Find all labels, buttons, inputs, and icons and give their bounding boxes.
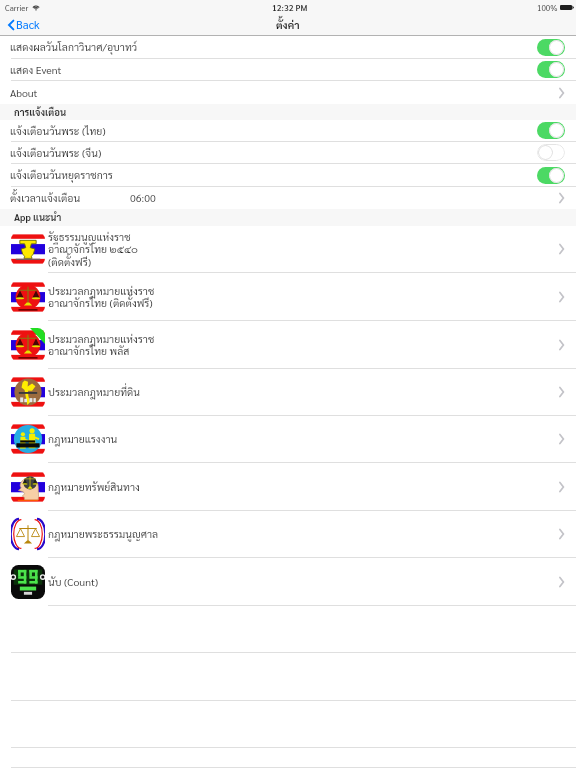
button[interactable]: ประมวลกฎหมายแห่งราช อาณาจักรไทย (ติดตั้ง… xyxy=(0,273,576,321)
staticText: 06:00 xyxy=(130,191,156,205)
button[interactable]: รัฐธรรมนูญแห่งราช อาณาจักรไทย ๒๕๔๐ (ติดต… xyxy=(0,226,576,273)
button[interactable]: แสดง Event xyxy=(0,59,576,81)
staticText: กฎหมายทรัพย์สินทาง xyxy=(48,480,140,494)
other: Toggle on xyxy=(537,122,565,139)
staticText: แจ้งเตือนวันหยุดราชการ xyxy=(10,168,113,182)
button[interactable]: แจ้งเตือนวันหยุดราชการ xyxy=(0,164,576,187)
staticText: 12:32 PM xyxy=(272,2,308,13)
other: Toggle on xyxy=(537,61,565,78)
button[interactable]: ประมวลกฎหมายที่ดิน xyxy=(0,369,576,416)
staticText: ตั้งค่า xyxy=(276,18,300,32)
button[interactable]: แจ้งเตือนวันพระ (ไทย) xyxy=(0,120,576,142)
staticText: App แนะนำ xyxy=(14,211,62,223)
staticText: กฎหมายแรงงาน xyxy=(48,432,118,446)
button[interactable]: แจ้งเตือนวันพระ (จีน) xyxy=(0,142,576,164)
button[interactable]: ตั้งเวลาแจ้งเตือน xyxy=(0,187,576,209)
button[interactable]: Back xyxy=(0,14,576,36)
staticText: รัฐธรรมนูญแห่งราช อาณาจักรไทย ๒๕๔๐ (ติดต… xyxy=(48,230,138,269)
staticText: Carrier xyxy=(5,2,29,12)
staticText: ประมวลกฎหมายแห่งราช อาณาจักรไทย (ติดตั้ง… xyxy=(48,284,155,310)
staticText: About xyxy=(10,86,38,100)
staticText: นับ (Count) xyxy=(48,575,99,589)
button[interactable]: กฎหมายพระธรรมนูญศาล xyxy=(0,511,576,558)
staticText: แจ้งเตือนวันพระ (จีน) xyxy=(10,146,102,160)
staticText: 100% xyxy=(537,2,558,12)
button[interactable]: แสดงผลวันโลกาวินาศ/อุบาทว์ xyxy=(0,36,576,59)
other: Toggle off xyxy=(537,144,565,161)
button[interactable]: นับ (Count) xyxy=(0,558,576,606)
staticText: ประมวลกฎหมายที่ดิน xyxy=(48,385,140,399)
staticText: แจ้งเตือนวันพระ (ไทย) xyxy=(10,124,106,138)
button[interactable]: กฎหมายทรัพย์สินทาง xyxy=(0,463,576,511)
staticText: แสดงผลวันโลกาวินาศ/อุบาทว์ xyxy=(10,40,138,54)
other: Toggle on xyxy=(537,39,565,56)
staticText: ตั้งเวลาแจ้งเตือน xyxy=(10,191,81,205)
staticText: ประมวลกฎหมายแห่งราช อาณาจักรไทย พลัส xyxy=(48,332,155,358)
button[interactable]: ประมวลกฎหมายแห่งราช อาณาจักรไทย พลัส xyxy=(0,321,576,369)
staticText: การแจ้งเตือน xyxy=(14,106,67,118)
other: Toggle on xyxy=(537,167,565,184)
staticText: กฎหมายพระธรรมนูญศาล xyxy=(48,527,159,541)
staticText: Back xyxy=(16,17,40,32)
button[interactable]: กฎหมายแรงงาน xyxy=(0,416,576,463)
button[interactable]: About xyxy=(0,81,576,104)
staticText: แสดง Event xyxy=(10,63,62,77)
